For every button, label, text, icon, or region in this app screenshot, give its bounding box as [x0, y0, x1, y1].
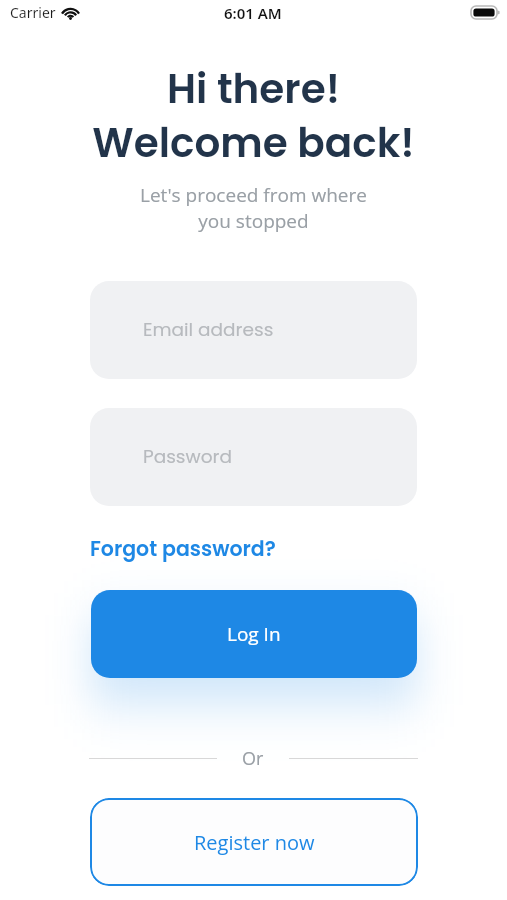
- staticText: 6:01 AM: [224, 3, 282, 23]
- button[interactable]: Register now: [90, 798, 418, 886]
- staticText: Email address: [143, 317, 274, 343]
- staticText: Carrier: [10, 3, 56, 22]
- other: Wi-Fi signal: [62, 7, 79, 19]
- other: Battery full: [471, 6, 500, 19]
- button[interactable]: Log In: [91, 590, 417, 678]
- staticText: Log In: [227, 621, 281, 647]
- button[interactable]: Password: [90, 408, 417, 506]
- staticText: Password: [143, 444, 232, 470]
- staticText: Register now: [194, 829, 315, 856]
- staticText: Let's proceed from where you stopped: [0, 182, 507, 234]
- staticText: Forgot password?: [90, 534, 276, 563]
- staticText: Hi there! Welcome back!: [0, 60, 507, 172]
- button[interactable]: Forgot password?: [90, 534, 276, 563]
- button[interactable]: Email address: [90, 281, 417, 379]
- staticText: Or: [242, 746, 264, 771]
